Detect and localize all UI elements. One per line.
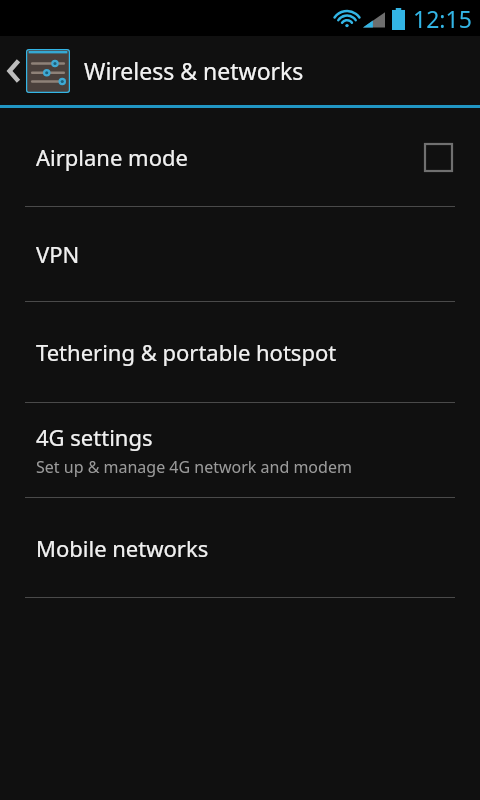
staticText: Tethering & portable hotspot (36, 337, 337, 367)
staticText: 4G settings (36, 422, 153, 452)
button[interactable]: Navigate up: Wireless & networks (0, 36, 480, 105)
button[interactable]: 4G settings (0, 403, 480, 497)
staticText: Set up & manage 4G network and modem (36, 456, 352, 478)
button[interactable]: Airplane mode (0, 108, 480, 206)
button[interactable]: VPN (0, 207, 480, 301)
staticText: 12:15 (413, 3, 472, 34)
button[interactable]: Mobile networks (0, 498, 480, 597)
staticText: Wireless & networks (84, 55, 304, 86)
button[interactable]: Airplane mode checkbox (421, 140, 455, 174)
staticText: Mobile networks (36, 533, 209, 563)
staticText: VPN (36, 239, 80, 269)
staticText: Airplane mode (36, 142, 188, 172)
button[interactable]: Tethering & portable hotspot (0, 302, 480, 402)
